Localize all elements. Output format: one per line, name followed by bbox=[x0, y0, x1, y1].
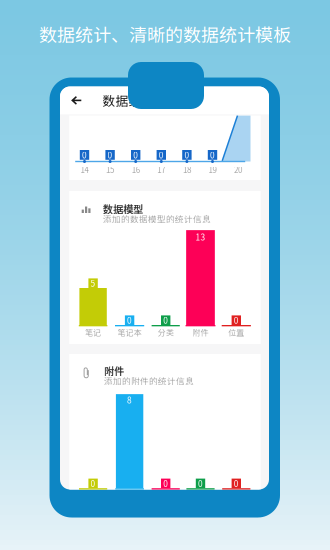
staticText: 16 bbox=[132, 164, 140, 175]
staticText: 添加的数据模型的统计信息 bbox=[103, 212, 211, 225]
staticText: 17 bbox=[157, 164, 165, 175]
staticText: 19 bbox=[208, 164, 216, 175]
staticText: 14 bbox=[80, 164, 88, 175]
staticText: 20 bbox=[234, 164, 242, 175]
staticText: 0 bbox=[133, 149, 138, 161]
staticText: 添加的附件的统计信息 bbox=[104, 374, 194, 387]
staticText: 0 bbox=[234, 477, 239, 489]
staticText: 5 bbox=[91, 277, 96, 289]
staticText: 0 bbox=[184, 149, 189, 161]
staticText: 8 bbox=[127, 394, 132, 406]
staticText: 0 bbox=[82, 149, 87, 161]
staticText: 0 bbox=[163, 314, 168, 326]
staticText: 0 bbox=[234, 314, 239, 326]
staticText: 0 bbox=[198, 477, 203, 489]
button[interactable]: Back bbox=[60, 86, 269, 489]
staticText: 数据模型 bbox=[103, 202, 143, 216]
staticText: 分类 bbox=[158, 326, 174, 338]
staticText: 0 bbox=[127, 314, 132, 326]
staticText: 0 bbox=[210, 149, 215, 161]
staticText: 0 bbox=[108, 149, 113, 161]
staticText: 笔记 bbox=[85, 326, 101, 338]
staticText: 笔记本 bbox=[118, 326, 142, 338]
staticText: 0 bbox=[163, 477, 168, 489]
staticText: 附件 bbox=[192, 326, 208, 338]
staticText: 数据统计 bbox=[102, 91, 154, 109]
staticText: 位置 bbox=[228, 326, 244, 338]
staticText: 附件 bbox=[104, 364, 124, 378]
staticText: 0 bbox=[159, 149, 164, 161]
staticText: 15 bbox=[106, 164, 114, 175]
staticText: 0 bbox=[91, 477, 96, 489]
staticText: 数据统计、清晰的数据统计模板 bbox=[39, 21, 291, 47]
staticText: 13 bbox=[195, 231, 205, 243]
staticText: 18 bbox=[183, 164, 191, 175]
